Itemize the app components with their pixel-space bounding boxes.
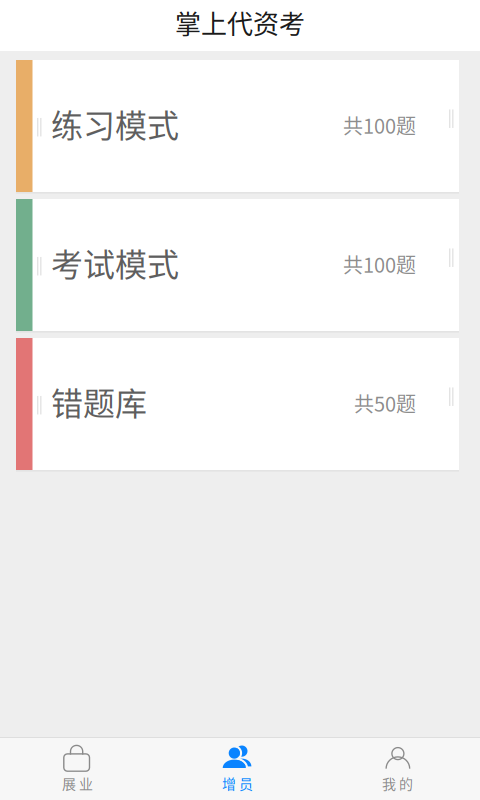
staticText: 错题库 [51,378,147,425]
staticText: 我 的 [382,773,413,793]
staticText: 增 员 [222,773,253,793]
staticText: 共100题 [343,249,416,278]
button[interactable]: 练习模式 [16,60,459,192]
button[interactable]: 我 的 [320,738,480,800]
staticText: 展 业 [62,773,93,793]
staticText: 考试模式 [51,239,179,286]
button[interactable]: 增 员 [160,738,320,800]
staticText: 掌上代资考 [175,4,305,41]
button[interactable]: 错题库 [16,338,459,470]
staticText: 共100题 [343,110,416,139]
button[interactable]: 展 业 [0,738,160,800]
staticText: 练习模式 [51,100,179,147]
button[interactable]: 考试模式 [16,199,459,331]
staticText: 共50题 [354,388,416,417]
